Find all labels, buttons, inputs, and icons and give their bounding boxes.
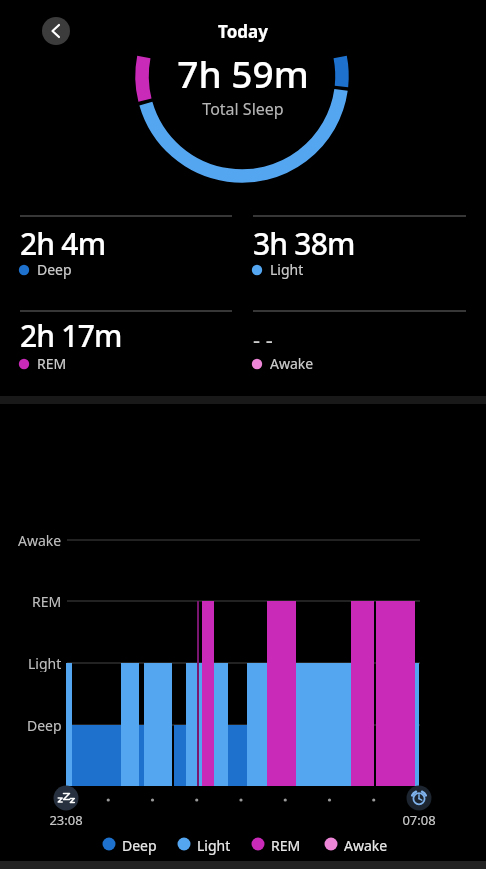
staticText: Deep (122, 836, 157, 855)
staticText: Deep (27, 716, 62, 734)
staticText: 2h 17m (20, 315, 122, 356)
staticText: - - (253, 324, 273, 354)
staticText: Awake (270, 354, 314, 373)
staticText: 23:08 (49, 811, 83, 829)
staticText: Light (270, 260, 304, 279)
staticText: Awake (344, 836, 388, 855)
staticText: 2h 4m (20, 223, 106, 264)
staticText: REM (271, 836, 301, 855)
staticText: Light (28, 654, 62, 672)
staticText: Today (0, 20, 486, 43)
staticText: Deep (37, 260, 72, 279)
button[interactable] (53, 785, 79, 811)
staticText: 3h 38m (253, 223, 355, 264)
staticText: REM (37, 354, 67, 373)
staticText: Awake (18, 531, 62, 549)
button[interactable] (42, 17, 70, 45)
staticText: Light (197, 836, 231, 855)
staticText: 7h 59m (0, 48, 486, 98)
staticText: 07:08 (402, 811, 436, 829)
staticText: REM (32, 592, 62, 610)
button[interactable] (406, 785, 432, 811)
staticText: Total Sleep (0, 98, 486, 120)
